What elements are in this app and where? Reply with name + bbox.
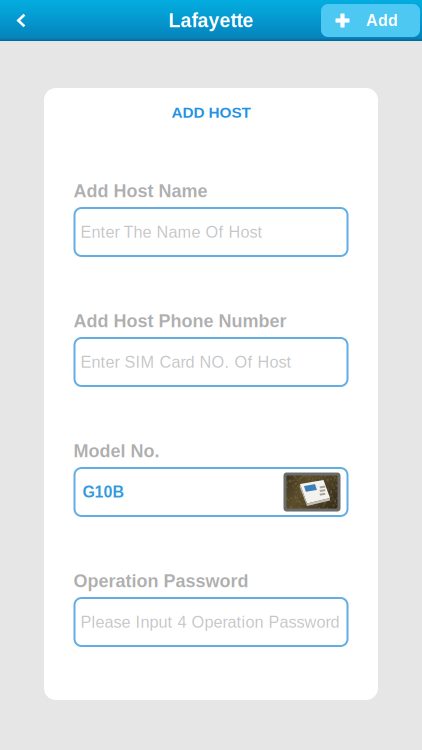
button[interactable]: Back <box>0 0 46 41</box>
button[interactable]: Add <box>321 4 420 37</box>
staticText: Add Host Name <box>73 181 207 201</box>
staticText: Model No. <box>73 441 159 461</box>
staticText: Lafayette <box>168 10 253 31</box>
staticText: Add <box>366 12 398 29</box>
staticText: Enter The Name Of Host <box>80 223 262 241</box>
staticText: Operation Password <box>73 571 248 591</box>
staticText: Please Input 4 Operation Password <box>80 613 339 631</box>
staticText: ADD HOST <box>171 104 250 121</box>
staticText: Add Host Phone Number <box>73 311 286 331</box>
staticText: G10B <box>82 483 124 501</box>
staticText: Enter SIM Card NO. Of Host <box>80 353 291 371</box>
